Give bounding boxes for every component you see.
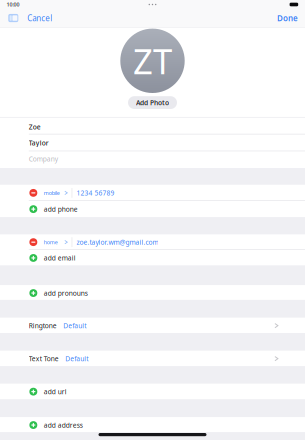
staticText: add phone bbox=[44, 205, 78, 214]
staticText: Done bbox=[277, 13, 298, 23]
staticText: Ringtone bbox=[29, 321, 57, 330]
staticText: Cancel bbox=[27, 13, 52, 23]
button[interactable]: add email bbox=[0, 250, 305, 265]
button[interactable]: add url bbox=[0, 384, 305, 399]
staticText: add address bbox=[44, 421, 83, 429]
staticText: home bbox=[44, 239, 58, 246]
button[interactable]: Text Tone bbox=[0, 351, 305, 366]
staticText: ZT bbox=[133, 38, 172, 84]
button[interactable]: add pronouns bbox=[0, 285, 305, 300]
button[interactable]: add phone bbox=[0, 201, 305, 217]
button[interactable]: mobile bbox=[0, 185, 305, 201]
staticText: add url bbox=[44, 387, 67, 396]
staticText: 10:00 bbox=[6, 1, 19, 8]
staticText: 1234 56789 bbox=[76, 188, 114, 197]
button[interactable]: Done bbox=[275, 11, 300, 25]
staticText: Text Tone bbox=[29, 354, 59, 363]
staticText: add email bbox=[44, 253, 76, 262]
staticText: Default bbox=[65, 354, 88, 363]
button[interactable]: Ringtone bbox=[0, 318, 305, 333]
staticText: Default bbox=[63, 321, 86, 330]
staticText: Company bbox=[29, 154, 58, 163]
staticText: zoe.taylor.wm@gmail.com bbox=[76, 238, 158, 247]
button[interactable]: Show Sidebar bbox=[6, 12, 20, 24]
staticText: Taylor bbox=[29, 138, 49, 147]
button[interactable]: add address bbox=[0, 417, 305, 432]
staticText: mobile bbox=[44, 189, 60, 196]
button[interactable]: home bbox=[0, 234, 305, 250]
staticText: add pronouns bbox=[44, 289, 88, 297]
staticText: Zoe bbox=[29, 122, 41, 131]
staticText: Add Photo bbox=[136, 98, 169, 107]
button[interactable]: Add Photo bbox=[128, 96, 177, 109]
button[interactable]: Cancel bbox=[25, 11, 54, 25]
